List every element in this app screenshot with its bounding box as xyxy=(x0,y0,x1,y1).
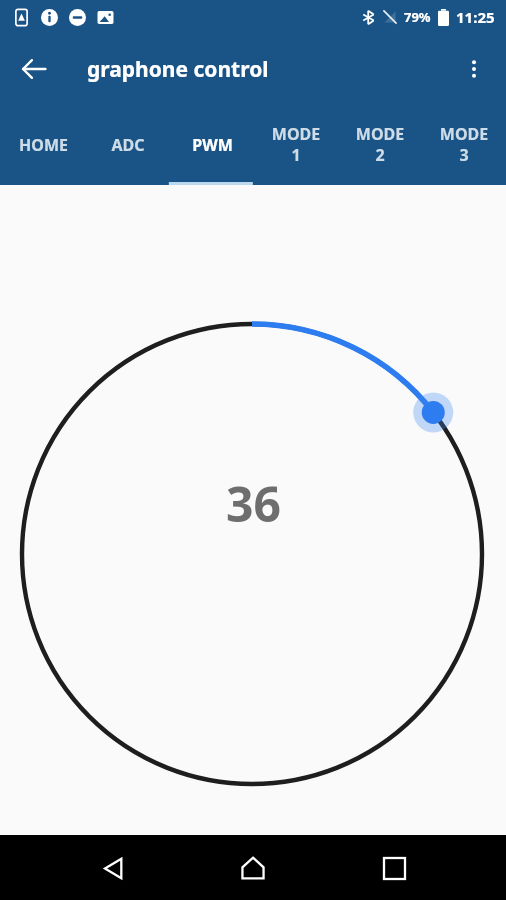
staticText: graphone control xyxy=(87,55,269,84)
button[interactable]: Home xyxy=(225,840,281,896)
button[interactable]: PWM xyxy=(170,104,254,185)
staticText: HOME xyxy=(19,134,68,156)
button[interactable]: Recent apps xyxy=(366,840,422,896)
button[interactable]: MODE3 xyxy=(422,104,506,185)
staticText: 79% xyxy=(404,8,431,26)
staticText: 11:25 xyxy=(456,7,495,27)
staticText: MODE3 xyxy=(438,123,490,166)
button[interactable]: HOME xyxy=(0,104,85,185)
staticText: MODE1 xyxy=(270,123,322,166)
button[interactable]: ADC xyxy=(85,104,170,185)
button[interactable]: More options xyxy=(448,43,500,95)
button[interactable]: MODE1 xyxy=(254,104,338,185)
button[interactable]: Back xyxy=(85,840,141,896)
button[interactable]: MODE2 xyxy=(338,104,422,185)
staticText: PWM xyxy=(192,134,233,156)
staticText: ADC xyxy=(111,134,145,156)
staticText: 36 xyxy=(226,471,281,536)
staticText: MODE2 xyxy=(354,123,406,166)
button[interactable]: Navigate up xyxy=(8,43,60,95)
